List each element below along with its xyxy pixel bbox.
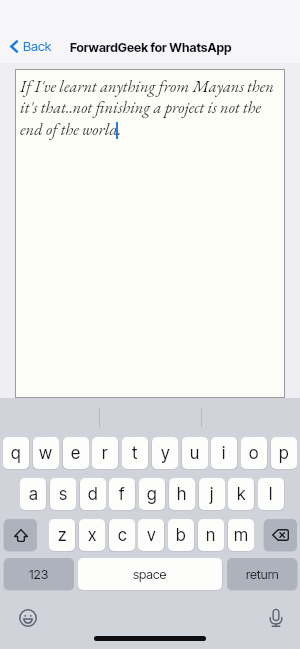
staticText: i xyxy=(222,443,226,464)
button[interactable]: c xyxy=(109,519,135,551)
button[interactable]: j xyxy=(199,478,225,510)
button[interactable]: b xyxy=(168,519,194,551)
staticText: space xyxy=(133,567,167,582)
staticText: ForwardGeek for WhatsApp xyxy=(70,40,232,55)
button[interactable]: z xyxy=(49,519,75,551)
staticText: j xyxy=(210,484,214,505)
staticText: return xyxy=(246,567,279,582)
button[interactable]: l xyxy=(258,478,284,510)
staticText: d xyxy=(88,484,98,505)
button[interactable]: h xyxy=(169,478,195,510)
button[interactable]: s xyxy=(50,478,76,510)
button[interactable]: x xyxy=(79,519,105,551)
button[interactable]: v xyxy=(138,519,164,551)
staticText: x xyxy=(88,525,97,546)
button[interactable]: space xyxy=(78,558,222,590)
staticText: f xyxy=(119,484,125,505)
button[interactable]: o xyxy=(241,437,267,469)
button[interactable]: f xyxy=(109,478,135,510)
staticText: 123 xyxy=(29,567,49,582)
staticText: n xyxy=(206,525,216,546)
button[interactable]: g xyxy=(139,478,165,510)
button[interactable]: Dictation xyxy=(267,609,285,627)
button[interactable]: 123 xyxy=(4,558,74,590)
staticText: u xyxy=(190,443,200,464)
button[interactable]: d xyxy=(80,478,106,510)
button[interactable]: y xyxy=(152,437,178,469)
staticText: Back xyxy=(23,38,52,54)
staticText: h xyxy=(177,484,187,505)
staticText: m xyxy=(234,525,248,546)
staticText: t xyxy=(132,443,138,464)
staticText: v xyxy=(147,525,156,546)
staticText: If I've learnt anything from Mayans then… xyxy=(20,75,282,139)
button[interactable]: p xyxy=(271,437,297,469)
staticText: b xyxy=(176,525,186,546)
staticText: r xyxy=(102,443,108,464)
button[interactable]: Emoji keyboard xyxy=(19,609,37,627)
staticText: e xyxy=(71,443,81,464)
button[interactable]: k xyxy=(228,478,254,510)
staticText: q xyxy=(11,443,21,464)
staticText: a xyxy=(29,484,38,505)
staticText: w xyxy=(39,443,53,464)
button[interactable]: t xyxy=(122,437,148,469)
staticText: g xyxy=(147,484,157,505)
staticText: y xyxy=(161,443,170,464)
button[interactable]: u xyxy=(182,437,208,469)
button[interactable]: return xyxy=(227,558,297,590)
staticText: p xyxy=(279,443,289,464)
staticText: o xyxy=(249,443,259,464)
button[interactable]: q xyxy=(3,437,29,469)
button[interactable]: a xyxy=(20,478,46,510)
button[interactable]: Backspace xyxy=(264,519,297,551)
staticText: c xyxy=(118,525,127,546)
button[interactable]: r xyxy=(92,437,118,469)
staticText: k xyxy=(237,484,246,505)
button[interactable]: m xyxy=(228,519,254,551)
button[interactable]: Back xyxy=(5,35,57,57)
button[interactable]: i xyxy=(211,437,237,469)
button[interactable]: w xyxy=(33,437,59,469)
button[interactable]: n xyxy=(198,519,224,551)
button[interactable]: Shift xyxy=(4,519,37,551)
staticText: s xyxy=(59,484,68,505)
staticText: z xyxy=(58,525,67,546)
button[interactable]: If I've learnt anything from Mayans then… xyxy=(15,69,285,398)
staticText: l xyxy=(269,484,273,505)
button[interactable]: e xyxy=(63,437,89,469)
